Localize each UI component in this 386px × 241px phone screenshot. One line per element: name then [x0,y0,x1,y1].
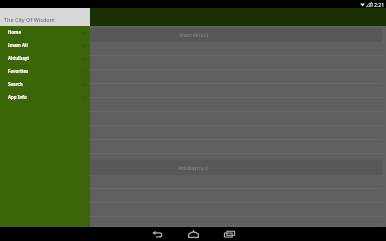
button[interactable] [0,70,382,84]
staticText: 2:21 [374,1,385,8]
button[interactable]: Back [139,227,175,241]
staticText: Imam Ali [8,42,28,48]
staticText: Search [8,81,23,87]
staticText: App Info [8,94,27,100]
staticText: Favorites [8,68,29,74]
button[interactable]: Imam Ali [0,38,90,51]
button[interactable] [0,98,382,112]
button[interactable]: Search [0,77,90,90]
button[interactable] [0,189,382,203]
button[interactable] [0,140,382,154]
button[interactable] [0,112,382,126]
staticText: Ahlulbayt [8,55,30,61]
button[interactable] [0,203,382,217]
button[interactable] [0,56,382,70]
button[interactable]: Home [175,227,211,241]
button[interactable]: Home [0,25,90,38]
button[interactable]: App Info [0,90,90,103]
staticText: Ahlulbayt (a.s) [178,165,208,171]
button[interactable] [0,217,382,227]
staticText: The City Of Wisdom [4,16,55,23]
button[interactable] [0,42,382,56]
button[interactable] [0,84,382,98]
button[interactable]: Ahlulbayt [0,51,90,64]
staticText: Imam Ali (a.s) [179,32,208,38]
button[interactable]: Recent apps [211,227,247,241]
button[interactable] [0,175,382,189]
button[interactable] [0,126,382,140]
staticText: Home [8,29,22,35]
button[interactable]: Favorites [0,64,90,77]
